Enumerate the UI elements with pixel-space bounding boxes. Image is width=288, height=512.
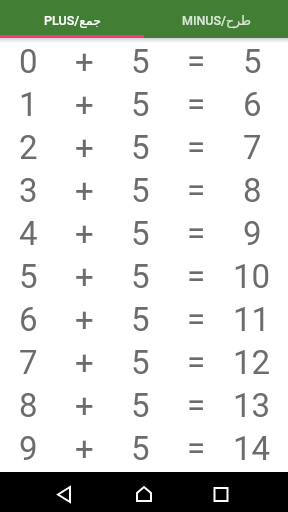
button[interactable]: PLUS/جمع [0, 2, 144, 38]
staticText: 9 [243, 214, 262, 253]
staticText: 5 [131, 300, 150, 339]
staticText: + [75, 128, 94, 167]
staticText: 8 [243, 171, 262, 210]
staticText: + [75, 214, 94, 253]
staticText: = [187, 386, 206, 425]
staticText: 12 [233, 343, 271, 382]
staticText: = [187, 257, 206, 296]
staticText: PLUS/جمع [44, 13, 101, 28]
staticText: 5 [131, 257, 150, 296]
staticText: 4 [19, 214, 38, 253]
staticText: 5 [131, 85, 150, 124]
staticText: 14 [233, 429, 271, 468]
staticText: MINUS/طرح [182, 13, 251, 28]
staticText: 5 [131, 343, 150, 382]
button[interactable]: 0 [0, 40, 280, 83]
staticText: = [187, 343, 206, 382]
staticText: 5 [131, 171, 150, 210]
staticText: 5 [131, 42, 150, 81]
button[interactable]: MINUS/طرح [144, 2, 288, 38]
staticText: 6 [243, 85, 262, 124]
staticText: + [75, 171, 94, 210]
button[interactable] [48, 472, 80, 512]
button[interactable]: 8 [0, 384, 280, 427]
button[interactable]: 5 [0, 255, 280, 298]
staticText: 5 [131, 429, 150, 468]
button[interactable]: 3 [0, 169, 280, 212]
staticText: 2 [19, 128, 38, 167]
button[interactable]: 6 [0, 298, 280, 341]
staticText: 0 [19, 42, 38, 81]
staticText: + [75, 42, 94, 81]
staticText: + [75, 343, 94, 382]
staticText: + [75, 429, 94, 468]
staticText: + [75, 257, 94, 296]
staticText: 6 [19, 300, 38, 339]
staticText: 1 [19, 85, 38, 124]
button[interactable]: 9 [0, 427, 280, 470]
staticText: = [187, 42, 206, 81]
staticText: 5 [19, 257, 38, 296]
staticText: 7 [243, 128, 262, 167]
button[interactable]: 1 [0, 83, 280, 126]
staticText: = [187, 429, 206, 468]
staticText: 10 [233, 257, 271, 296]
button[interactable]: 2 [0, 126, 280, 169]
staticText: = [187, 214, 206, 253]
button[interactable] [205, 472, 237, 512]
staticText: + [75, 386, 94, 425]
staticText: 5 [131, 386, 150, 425]
staticText: 8 [19, 386, 38, 425]
staticText: 5 [131, 128, 150, 167]
staticText: 7 [19, 343, 38, 382]
staticText: = [187, 85, 206, 124]
staticText: 11 [233, 300, 271, 339]
button[interactable]: 7 [0, 341, 280, 384]
staticText: 3 [19, 171, 38, 210]
button[interactable]: 4 [0, 212, 280, 255]
staticText: 5 [131, 214, 150, 253]
button[interactable] [128, 472, 160, 512]
staticText: = [187, 300, 206, 339]
staticText: 9 [19, 429, 38, 468]
staticText: 13 [233, 386, 271, 425]
staticText: = [187, 128, 206, 167]
staticText: + [75, 300, 94, 339]
staticText: = [187, 171, 206, 210]
staticText: + [75, 85, 94, 124]
staticText: 5 [243, 42, 262, 81]
